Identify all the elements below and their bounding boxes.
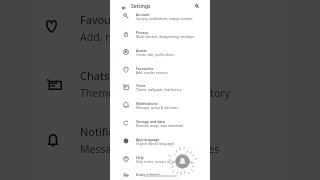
staticText: Account (136, 12, 150, 17)
staticText: Add, reorder, remove (136, 71, 168, 75)
staticText: Storage and data (136, 119, 165, 124)
button[interactable]: Search (193, 2, 201, 10)
staticText: Message, group & call tones (136, 106, 179, 110)
button[interactable]: Chats (110, 78, 210, 96)
staticText: Help centre, contact us, privacy policy (136, 160, 193, 164)
staticText: Create, edit, profile photo (136, 53, 175, 57)
button[interactable]: Storage and data (110, 114, 210, 132)
button[interactable]: Notifications (0, 112, 320, 168)
button[interactable]: Favourites (110, 61, 210, 79)
staticText: Favourites (136, 66, 154, 71)
staticText: Theme, wallpaper, chat history (80, 86, 231, 100)
staticText: App language (136, 137, 160, 142)
button[interactable]: Privacy (110, 25, 210, 43)
button[interactable]: Invite a friend (110, 167, 210, 180)
staticText: Avatar (136, 48, 147, 53)
button[interactable]: Avatar (110, 43, 210, 61)
staticText: Privacy (136, 30, 148, 35)
staticText: Help (136, 155, 144, 160)
staticText: Invite a friend (136, 172, 160, 177)
staticText: Message, group & call tones (80, 142, 220, 156)
staticText: Chats (80, 68, 110, 83)
staticText: Chats (136, 83, 146, 88)
staticText: Theme, wallpaper, chat history (136, 88, 182, 92)
button[interactable]: Account (110, 7, 210, 25)
staticText: Favourites (80, 12, 134, 27)
staticText: English (device language) (136, 142, 174, 146)
staticText: Settings (131, 3, 151, 10)
staticText: Block contacts, disappearing messages (136, 35, 195, 39)
staticText: Add, reorder, remove (80, 30, 184, 44)
button[interactable]: Favourites (0, 0, 320, 56)
button[interactable]: App language (110, 132, 210, 150)
button[interactable]: Chats (0, 56, 320, 112)
staticText: Notifications (80, 124, 146, 139)
button[interactable]: Notifications (110, 96, 210, 114)
button[interactable]: Back (120, 4, 128, 12)
button[interactable]: Help (110, 150, 210, 168)
staticText: Security notifications, change number (136, 17, 193, 21)
staticText: Notifications (136, 101, 158, 106)
staticText: Network usage, auto-download (136, 124, 184, 128)
